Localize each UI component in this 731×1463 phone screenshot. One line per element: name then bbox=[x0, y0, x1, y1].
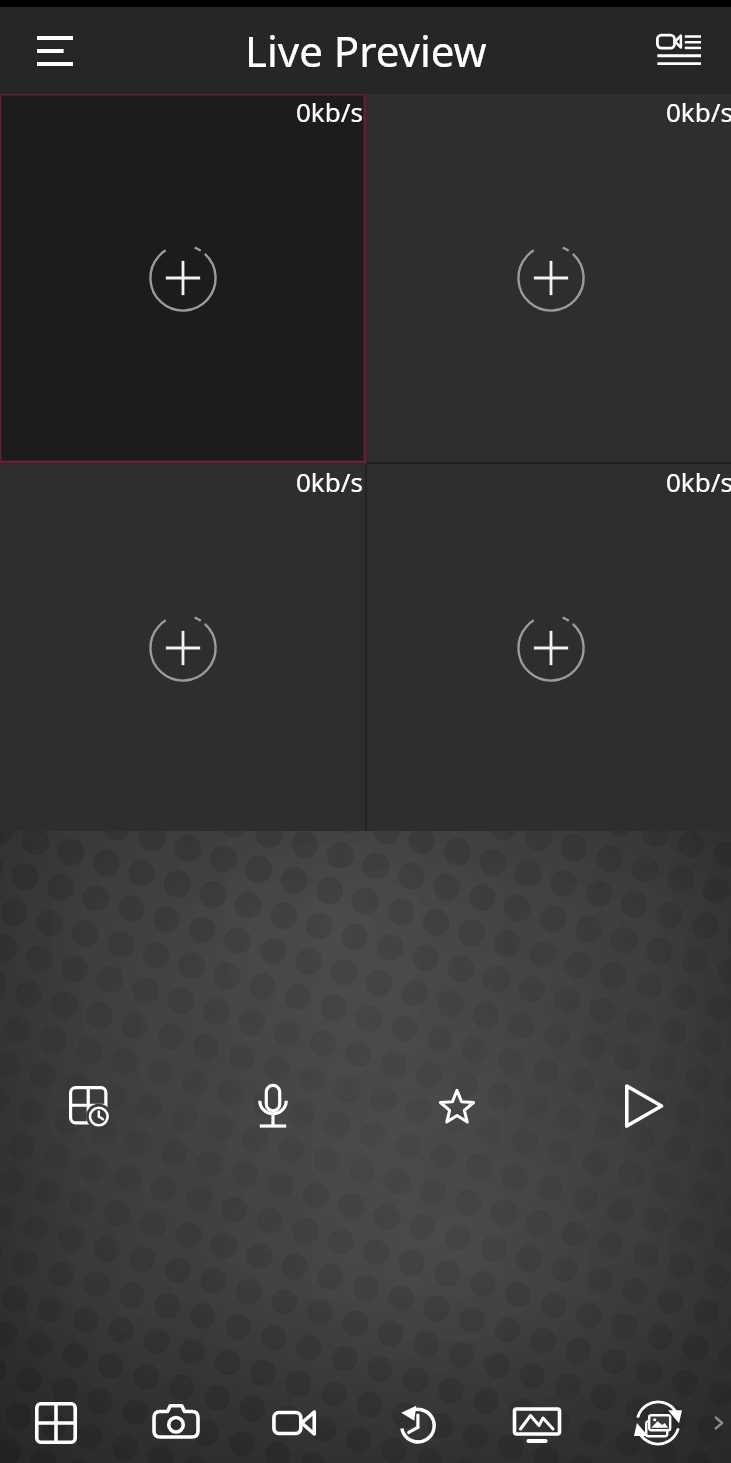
button[interactable]: Snapshot bbox=[118, 1382, 234, 1463]
button[interactable]: Grid view bbox=[0, 1382, 114, 1463]
button[interactable]: Camera channel bbox=[367, 94, 731, 462]
button[interactable]: Play bbox=[594, 1060, 686, 1152]
button[interactable]: Camera channel bbox=[0, 464, 365, 831]
staticText: 0kb/s bbox=[296, 464, 363, 499]
staticText: 0kb/s bbox=[666, 464, 731, 499]
button[interactable]: Camera channel bbox=[0, 94, 365, 462]
button[interactable]: Favourite bbox=[411, 1060, 503, 1152]
button[interactable]: Camera list bbox=[651, 7, 705, 94]
staticText: Live Preview bbox=[245, 22, 487, 79]
staticText: 0kb/s bbox=[666, 94, 731, 129]
button[interactable]: Playback timeline bbox=[43, 1060, 135, 1152]
button[interactable]: Microphone bbox=[227, 1060, 319, 1152]
button[interactable]: Gallery bbox=[600, 1382, 716, 1463]
staticText: 0kb/s bbox=[296, 94, 363, 129]
button[interactable]: Display bbox=[479, 1382, 595, 1463]
button[interactable]: More bbox=[706, 1382, 731, 1463]
button[interactable]: Camera channel bbox=[367, 464, 731, 831]
button[interactable]: Open navigation menu bbox=[19, 7, 91, 94]
button[interactable]: History bbox=[359, 1382, 475, 1463]
button[interactable]: Record bbox=[238, 1382, 354, 1463]
